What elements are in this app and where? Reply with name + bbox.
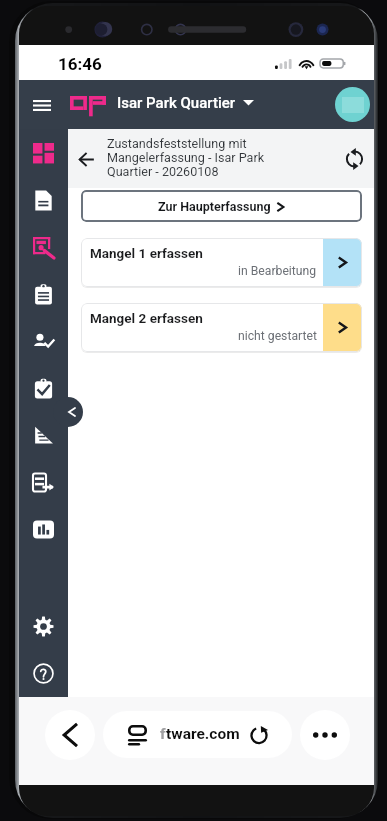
button[interactable]: Documents [20, 177, 67, 224]
button[interactable]: Find in page [20, 224, 67, 271]
staticText: Zur Haupterfassung [158, 199, 271, 214]
staticText: 16:46 [58, 54, 102, 74]
button[interactable]: Sync [339, 144, 369, 174]
button[interactable]: Mangel 1 erfassen [81, 238, 362, 287]
staticText: Mangel 1 erfassen [90, 245, 203, 261]
button[interactable]: Menu [27, 90, 57, 120]
button[interactable]: Profile [335, 87, 370, 122]
button[interactable]: Reports [20, 506, 67, 553]
button[interactable]: Clipboard [20, 271, 67, 318]
button[interactable]: Collapse menu [53, 397, 83, 427]
staticText: nicht gestartet [238, 329, 317, 343]
button[interactable]: Zur Haupterfassung [81, 190, 362, 222]
staticText: tware.com [166, 725, 240, 743]
button[interactable]: Back [72, 145, 100, 173]
staticText: Zustandsfeststellung mit Mangelerfassung… [107, 136, 269, 179]
staticText: in Bearbeitung [238, 264, 317, 278]
button[interactable]: More options [300, 710, 350, 760]
button[interactable]: Help [20, 650, 67, 697]
button[interactable]: Dashboard [20, 130, 67, 177]
button[interactable]: Settings [20, 603, 67, 650]
button[interactable]: f [103, 711, 292, 758]
staticText: f [160, 725, 166, 743]
staticText: Isar Park Quartier [117, 94, 236, 112]
button[interactable]: Tasks [20, 365, 67, 412]
staticText: Mangel 2 erfassen [90, 310, 203, 326]
button[interactable]: Mangel 2 erfassen [81, 303, 362, 352]
button[interactable]: People [20, 318, 67, 365]
button[interactable]: Measure [20, 412, 67, 459]
button[interactable]: Back [45, 710, 95, 760]
button[interactable]: Export [20, 459, 67, 506]
